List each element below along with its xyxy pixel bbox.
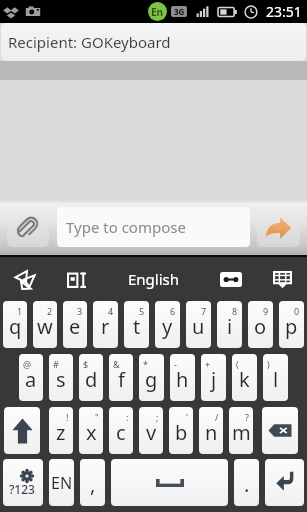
staticText: 0 [294, 305, 300, 317]
staticText: 5 [139, 305, 145, 317]
staticText: o [254, 313, 267, 340]
button[interactable]: GO keyboard menu [9, 263, 41, 295]
staticText: ) [267, 358, 270, 370]
button[interactable]: / [199, 407, 223, 454]
button[interactable]: . [234, 459, 259, 506]
button[interactable]: Space [111, 459, 228, 506]
staticText: Type to compose [66, 217, 186, 237]
button[interactable]: # [49, 354, 73, 401]
staticText: , [90, 471, 96, 498]
button[interactable]: $ [79, 354, 103, 401]
button[interactable]: " [79, 407, 103, 454]
staticText: d [85, 366, 98, 393]
staticText: c [116, 419, 126, 446]
staticText: e [69, 313, 81, 340]
staticText: x [86, 419, 97, 446]
staticText: v [146, 419, 157, 446]
staticText: h [176, 366, 189, 393]
button[interactable]: Hide keyboard [267, 264, 297, 294]
button[interactable]: 0 [279, 301, 304, 348]
staticText: k [239, 366, 250, 393]
staticText: * [143, 358, 148, 370]
staticText: l [273, 366, 279, 393]
staticText: f [118, 366, 125, 393]
staticText: s [56, 366, 66, 393]
button[interactable]: Enter [265, 459, 304, 506]
button[interactable]: Send [257, 207, 300, 247]
staticText: / [215, 411, 219, 423]
button[interactable]: 8 [217, 301, 242, 348]
staticText: q [9, 313, 22, 340]
staticText: u [192, 313, 205, 340]
staticText: 6 [170, 305, 176, 317]
staticText: " [95, 411, 99, 423]
staticText: 3 [77, 305, 83, 317]
staticText: 2 [47, 305, 53, 317]
button[interactable]: ! [49, 407, 73, 454]
button[interactable]: 5 [124, 301, 149, 348]
staticText: - [174, 358, 177, 370]
staticText: ?123 [9, 481, 35, 497]
staticText: m [232, 419, 251, 446]
staticText: p [285, 313, 298, 340]
staticText: @ [23, 358, 32, 370]
button[interactable]: ) [263, 354, 288, 401]
staticText: ? [245, 411, 249, 423]
button[interactable]: Shift [4, 407, 40, 454]
staticText: ( [236, 358, 239, 370]
staticText: r [101, 313, 110, 340]
button[interactable]: - [170, 354, 195, 401]
button[interactable]: Symbols [3, 459, 43, 506]
button[interactable]: ( [232, 354, 257, 401]
staticText: : [126, 411, 129, 423]
staticText: En [151, 5, 164, 19]
staticText: g [145, 366, 158, 393]
staticText: ; [156, 411, 159, 423]
staticText: w [37, 313, 53, 340]
staticText: # [53, 358, 59, 370]
staticText: 8 [232, 305, 238, 317]
staticText: . [244, 471, 250, 498]
staticText: + [205, 358, 211, 370]
button[interactable]: Attach [7, 207, 49, 247]
button[interactable]: Recipient: GOKeyboard [1, 23, 306, 61]
staticText: n [205, 419, 218, 446]
button[interactable]: @ [19, 354, 43, 401]
button[interactable]: & [109, 354, 133, 401]
staticText: EN [51, 472, 73, 494]
staticText: 23:51 [266, 2, 302, 21]
staticText: a [25, 366, 37, 393]
staticText: 7 [201, 305, 207, 317]
button[interactable]: 1 [3, 301, 27, 348]
staticText: $ [83, 358, 89, 370]
button[interactable]: 6 [155, 301, 180, 348]
button[interactable]: 2 [33, 301, 57, 348]
button[interactable]: English [122, 266, 186, 292]
button[interactable]: , [80, 459, 105, 506]
button[interactable]: * [139, 354, 164, 401]
staticText: 4 [108, 305, 114, 317]
staticText: b [175, 419, 188, 446]
staticText: j [211, 366, 217, 393]
button[interactable]: Keyboard layout [61, 264, 91, 294]
button[interactable]: Language [49, 459, 74, 506]
button[interactable]: : [109, 407, 133, 454]
button[interactable]: Theme [216, 264, 246, 294]
button[interactable]: ? [229, 407, 253, 454]
button[interactable]: ; [139, 407, 163, 454]
button[interactable]: 7 [186, 301, 211, 348]
staticText: i [227, 313, 233, 340]
button[interactable]: 4 [93, 301, 118, 348]
button[interactable]: 3 [63, 301, 87, 348]
staticText: y [162, 313, 173, 340]
staticText: t [133, 313, 141, 340]
staticText: ' [186, 411, 189, 423]
staticText: ! [66, 411, 69, 423]
button[interactable]: Backspace [262, 407, 298, 454]
staticText: 3G [174, 6, 185, 17]
button[interactable]: 9 [248, 301, 273, 348]
button[interactable]: Type to compose [57, 207, 250, 247]
button[interactable]: ' [169, 407, 193, 454]
button[interactable]: + [201, 354, 226, 401]
staticText: z [56, 419, 66, 446]
